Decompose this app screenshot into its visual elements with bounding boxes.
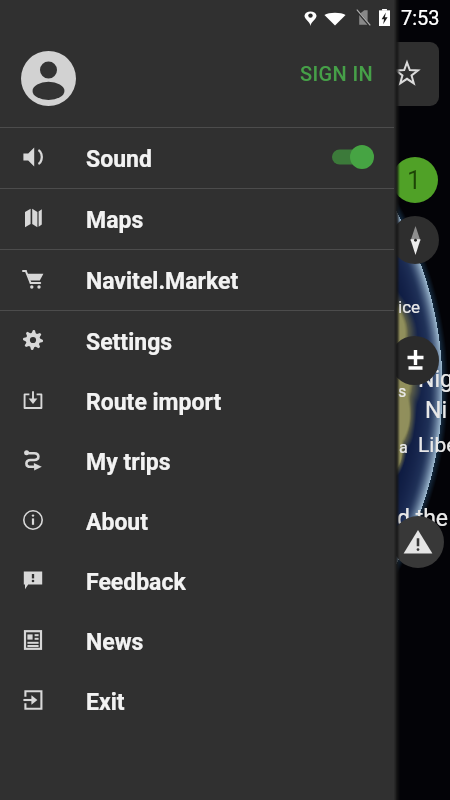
button[interactable]: Navitel.Market (0, 250, 396, 310)
button[interactable]: My trips (0, 431, 396, 491)
button[interactable]: Feedback (0, 551, 396, 611)
staticText: Exit (86, 689, 125, 716)
button[interactable]: Route stops (392, 157, 438, 203)
staticText: Maps (86, 207, 144, 234)
staticText: Settings (86, 329, 173, 356)
button[interactable]: Sound toggle (332, 144, 374, 170)
staticText: Nig (418, 366, 450, 393)
staticText: Sound (86, 146, 152, 173)
button[interactable]: Settings (0, 311, 396, 371)
button[interactable]: Favourites (300, 42, 439, 106)
staticText: Route import (86, 389, 222, 416)
button[interactable]: Exit (0, 671, 396, 731)
button[interactable]: Compass (391, 216, 439, 264)
staticText: 1 (407, 166, 422, 195)
staticText: 7:53 (401, 6, 440, 29)
staticText: Feedback (86, 569, 186, 596)
button[interactable]: Account (21, 51, 76, 106)
staticText: Ni (425, 397, 448, 424)
button[interactable]: Warning (392, 516, 444, 568)
button[interactable]: Maps (0, 189, 396, 249)
staticText: d the G (397, 505, 450, 532)
staticText: About (86, 509, 149, 536)
button[interactable]: SIGN IN (288, 50, 386, 97)
staticText: a (399, 438, 408, 457)
button[interactable]: News (0, 611, 396, 671)
button[interactable]: Zoom (390, 336, 439, 385)
staticText: News (86, 629, 144, 656)
staticText: My trips (86, 449, 171, 476)
button[interactable]: About (0, 491, 396, 551)
staticText: SIGN IN (300, 62, 374, 85)
button[interactable]: Sound (0, 128, 396, 188)
button[interactable]: Route import (0, 371, 396, 431)
staticText: s (398, 382, 407, 401)
staticText: Navitel.Market (86, 268, 239, 295)
staticText: ice (398, 297, 421, 317)
staticText: Libe (418, 433, 450, 458)
